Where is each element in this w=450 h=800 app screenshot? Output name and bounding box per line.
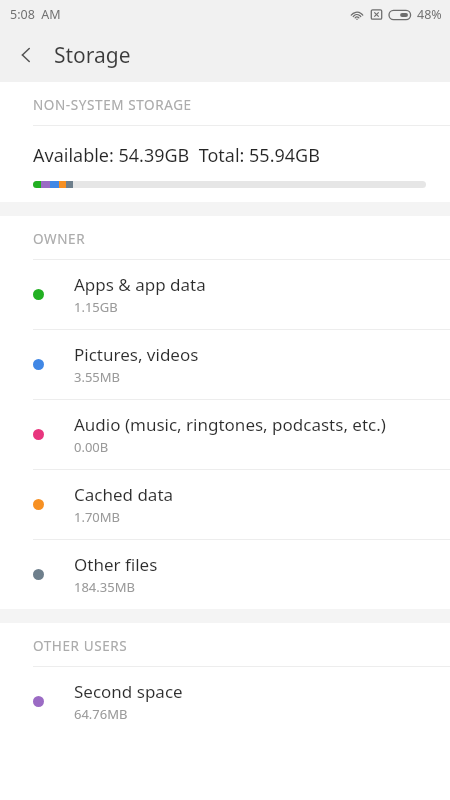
button[interactable]: Cached data [0,470,450,539]
staticText: Cached data [74,483,174,506]
staticText: Pictures, videos [74,343,199,366]
staticText: OWNER [33,230,86,248]
staticText: Audio (music, ringtones, podcasts, etc.) [74,413,386,436]
staticText: 0.00B [74,438,109,456]
staticText: 64.76MB [74,705,128,723]
button[interactable]: Back [6,35,46,75]
staticText: OTHER USERS [33,637,128,655]
button[interactable]: Audio (music, ringtones, podcasts, etc.) [0,400,450,469]
staticText: 48% [417,6,442,23]
button[interactable]: Available: 54.39GB Total: 55.94GB [0,126,450,202]
button[interactable]: Apps & app data [0,260,450,329]
button[interactable]: Second space [0,667,450,736]
button[interactable]: Other files [0,540,450,609]
button[interactable]: Pictures, videos [0,330,450,399]
staticText: 1.15GB [74,298,118,316]
staticText: 1.70MB [74,508,121,526]
staticText: Second space [74,680,183,703]
staticText: 184.35MB [74,578,135,596]
staticText: Available: 54.39GB Total: 55.94GB [33,143,320,168]
staticText: 5:08 AM [10,6,61,23]
staticText: Storage [54,41,131,70]
staticText: 3.55MB [74,368,121,386]
staticText: NON-SYSTEM STORAGE [33,96,192,114]
staticText: Other files [74,553,158,576]
staticText: Apps & app data [74,273,206,296]
